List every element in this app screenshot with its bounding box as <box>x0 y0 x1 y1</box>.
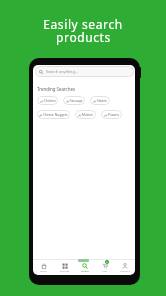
staticText: HOME <box>40 270 47 273</box>
staticText: EXPLORE <box>60 270 70 273</box>
staticText: Cheese Nuggets <box>43 113 68 117</box>
button[interactable]: Chicken <box>37 96 58 105</box>
button[interactable]: ACCOUNT <box>115 263 135 275</box>
staticText: Mutton <box>82 113 94 117</box>
button[interactable]: EXPLORE <box>54 263 75 275</box>
staticText: Chicken <box>44 99 56 103</box>
staticText: Search anything... <box>46 69 78 74</box>
staticText: Salami <box>97 99 107 103</box>
staticText: Trending Searches <box>37 86 76 92</box>
button[interactable]: HOME <box>33 263 54 275</box>
button[interactable]: SEARCH <box>75 263 95 275</box>
staticText: Easily search <box>43 16 123 32</box>
button[interactable]: Salami <box>90 96 110 105</box>
staticText: products <box>56 29 111 45</box>
button[interactable]: CART <box>95 263 115 275</box>
staticText: Prawns <box>108 113 119 117</box>
button[interactable]: Prawns <box>101 110 122 119</box>
button[interactable]: Sausage <box>63 96 85 105</box>
staticText: Sausage <box>70 99 83 103</box>
staticText: CART <box>102 270 108 273</box>
button[interactable]: Search anything... <box>35 66 134 77</box>
button[interactable]: Cheese Nuggets <box>37 110 70 119</box>
staticText: 9 <box>106 261 108 264</box>
staticText: SEARCH <box>81 270 90 273</box>
button[interactable]: Mutton <box>75 110 96 119</box>
staticText: ACCOUNT <box>120 270 131 273</box>
